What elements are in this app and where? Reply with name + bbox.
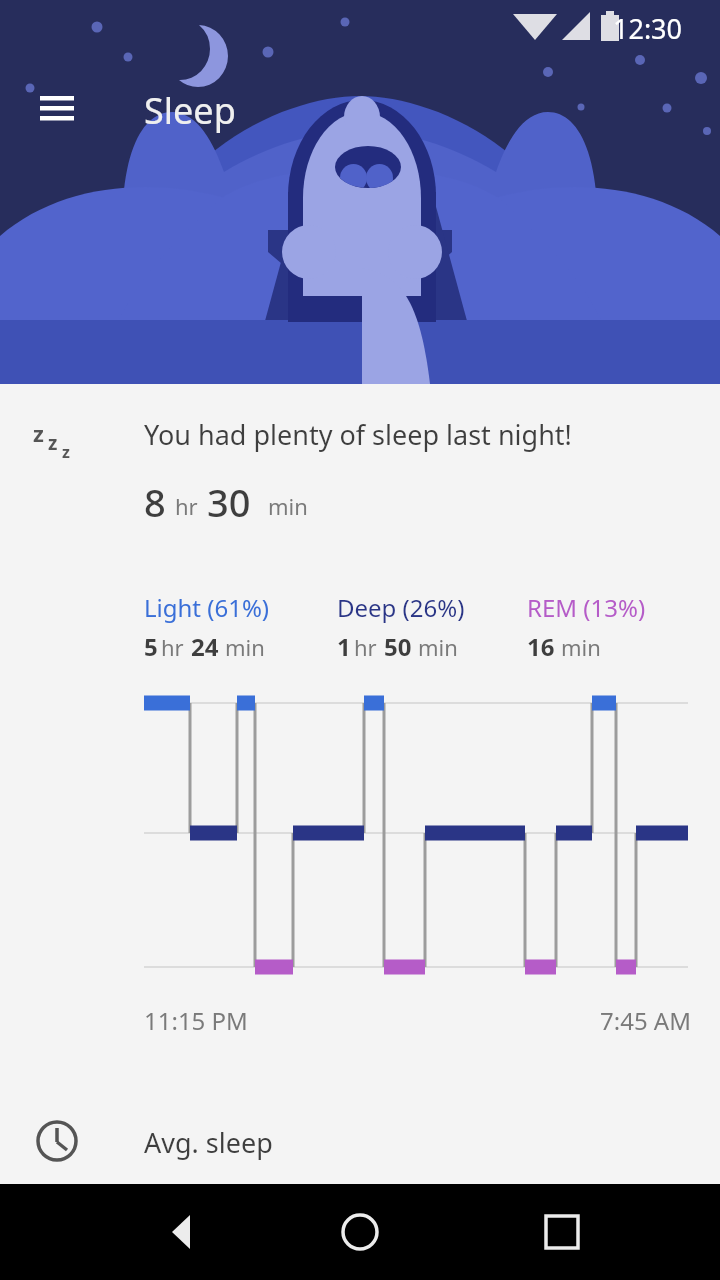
staticText: 12:30 — [613, 10, 683, 47]
button[interactable]: Recent apps — [510, 1190, 614, 1278]
staticText: You had plenty of sleep last night! — [144, 416, 572, 453]
staticText: Light (61%) — [144, 591, 270, 624]
staticText: min — [225, 632, 265, 662]
button[interactable] — [0, 1096, 720, 1184]
staticText: 8 — [144, 476, 166, 528]
staticText: 30 — [207, 476, 251, 528]
staticText: Avg. sleep — [144, 1124, 273, 1161]
button[interactable]: Home — [308, 1190, 412, 1278]
button[interactable]: Back — [128, 1190, 232, 1278]
staticText: Deep (26%) — [337, 591, 465, 624]
staticText: min — [561, 632, 601, 662]
staticText: hr — [354, 632, 377, 662]
staticText: 5 — [144, 630, 158, 663]
staticText: 50 — [384, 630, 412, 663]
staticText: z — [33, 418, 44, 448]
staticText: hr — [175, 491, 198, 521]
staticText: z — [62, 441, 70, 463]
staticText: 24 — [191, 630, 219, 663]
staticText: REM (13%) — [527, 591, 646, 624]
staticText: 11:15 PM — [144, 1004, 248, 1037]
staticText: z — [48, 430, 58, 456]
staticText: Sleep — [144, 86, 236, 135]
button[interactable]: Open navigation menu — [20, 76, 92, 136]
staticText: min — [268, 491, 308, 521]
staticText: 1 — [337, 630, 351, 663]
staticText: min — [418, 632, 458, 662]
staticText: 7:45 AM — [600, 1004, 691, 1037]
staticText: hr — [161, 632, 184, 662]
staticText: 16 — [527, 630, 555, 663]
